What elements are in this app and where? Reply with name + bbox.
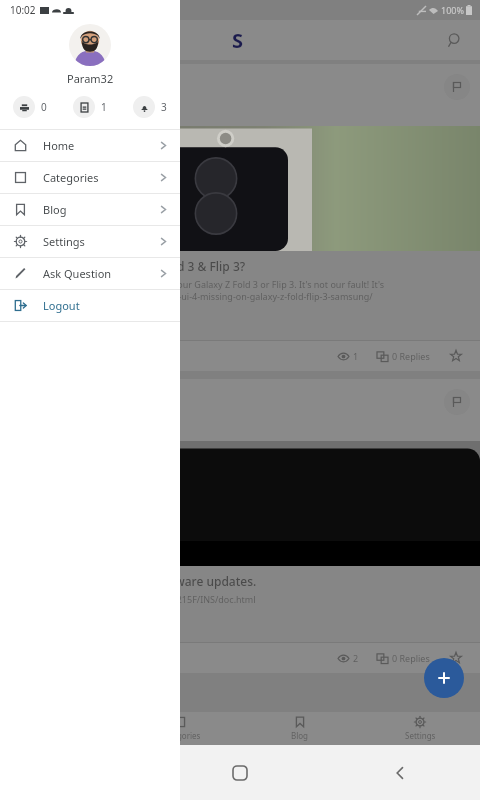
staticText: 1 [101, 100, 107, 114]
staticText: 100% [441, 4, 464, 16]
staticText: 0 [41, 100, 47, 114]
staticText: Logout [43, 298, 80, 313]
staticText: Blog [291, 730, 309, 741]
button[interactable]: Report [0, 379, 480, 673]
staticText: 0 Replies [392, 652, 430, 664]
button[interactable]: 1 [336, 350, 361, 362]
staticText: Categories [43, 170, 99, 185]
button[interactable]: Settings [0, 226, 180, 258]
staticText: 3 [161, 100, 167, 114]
button[interactable]: 0 [12, 95, 48, 119]
staticText: Ask Question [43, 266, 112, 281]
button[interactable]: Home [160, 745, 320, 800]
button[interactable]: 0 Replies [375, 350, 432, 362]
button[interactable]: Logout [0, 290, 180, 322]
staticText: Categories [160, 730, 201, 741]
staticText: Home [43, 138, 75, 153]
button[interactable]: Report [444, 389, 470, 415]
staticText: Blog [43, 202, 67, 217]
button[interactable]: Blog [0, 194, 180, 226]
button[interactable]: Bookmark [446, 648, 466, 668]
button[interactable]: Create new post [424, 658, 464, 698]
staticText: Why no One UI 4 beta for Fold 3 & Flip 3… [12, 258, 246, 274]
staticText: Settings [43, 234, 85, 249]
staticText: One UI 4 beta registration missing on yo… [12, 278, 385, 303]
button[interactable]: Blog [240, 712, 360, 745]
button[interactable]: Home [0, 130, 180, 162]
button[interactable]: Ask Question [0, 258, 180, 290]
button[interactable]: 0 Replies [375, 652, 432, 664]
staticText: https://doc.samsungmobile.com/SM-M215F/I… [12, 593, 256, 605]
button[interactable]: 2 [336, 652, 361, 664]
button[interactable]: Categories [120, 712, 240, 745]
button[interactable]: Settings [360, 712, 480, 745]
button[interactable]: Categories [0, 162, 180, 194]
staticText: 2 [353, 652, 359, 664]
button[interactable]: Back [320, 745, 480, 800]
staticText: S [232, 27, 244, 54]
staticText: Settings [405, 730, 436, 741]
button[interactable]: 3 [132, 95, 168, 119]
staticText: Param32 [67, 71, 114, 86]
staticText: 1 [353, 350, 359, 362]
button[interactable]: Bookmark [446, 346, 466, 366]
button[interactable]: Search [440, 25, 470, 55]
staticText: 10:02 [10, 3, 36, 17]
button[interactable]: Report [0, 64, 480, 371]
button[interactable]: 1 [72, 95, 108, 119]
button[interactable]: Report [444, 74, 470, 100]
staticText: Galaxy M21 manual and software updates. [12, 573, 257, 589]
staticText: 0 Replies [392, 350, 430, 362]
